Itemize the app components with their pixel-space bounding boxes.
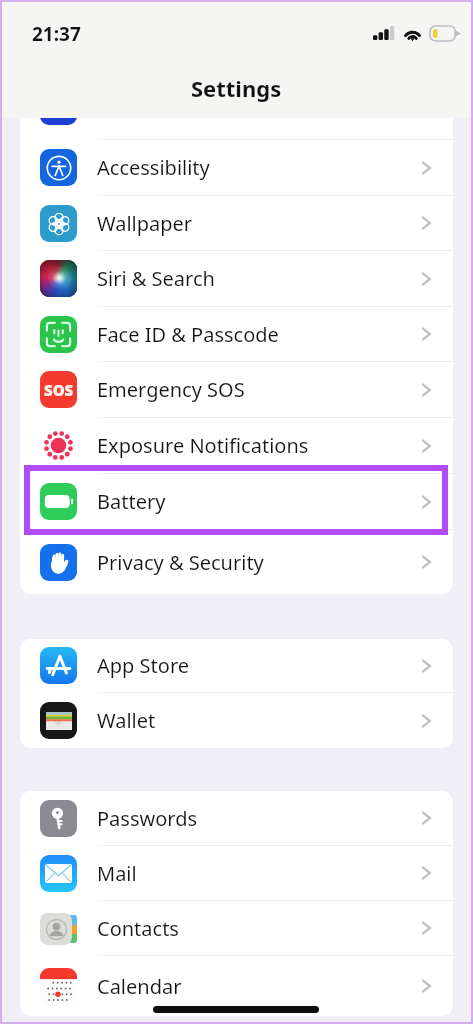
staticText: Siri & Search — [97, 265, 215, 292]
staticText: Settings — [191, 73, 282, 103]
staticText: Mail — [97, 860, 137, 887]
other: Battery — [430, 26, 458, 41]
staticText: Emergency SOS — [97, 376, 245, 403]
staticText: Wallet — [97, 707, 156, 734]
button[interactable]: Battery — [20, 474, 453, 530]
button[interactable]: Wallet — [20, 693, 453, 748]
button[interactable]: Privacy & Security — [20, 530, 453, 594]
staticText: Accessibility — [97, 154, 210, 181]
button[interactable]: Face ID & Passcode — [20, 307, 453, 362]
staticText: Exposure Notifications — [97, 432, 309, 459]
button[interactable]: Wallpaper — [20, 196, 453, 251]
button[interactable]: Siri & Search — [20, 251, 453, 307]
button[interactable]: Calendar — [20, 956, 453, 1016]
staticText: Battery — [97, 488, 166, 515]
staticText: Calendar — [97, 973, 182, 1000]
staticText: 21:37 — [32, 21, 81, 47]
staticText: App Store — [97, 652, 190, 679]
staticText: SOS — [44, 380, 74, 400]
button[interactable]: App Store — [20, 639, 453, 693]
button[interactable]: SOS — [20, 362, 453, 418]
staticText: Privacy & Security — [97, 549, 264, 576]
button[interactable]: Contacts — [20, 901, 453, 956]
staticText: Wallpaper — [97, 210, 193, 237]
button[interactable]: Mail — [20, 846, 453, 901]
other: Cellular signal — [373, 26, 395, 40]
staticText: Face ID & Passcode — [97, 321, 279, 348]
button[interactable] — [20, 118, 453, 140]
staticText: Contacts — [97, 915, 179, 942]
button[interactable]: Accessibility — [20, 140, 453, 196]
button[interactable]: Exposure Notifications — [20, 418, 453, 474]
staticText: Passwords — [97, 805, 198, 832]
button[interactable]: Passwords — [20, 791, 453, 846]
other: Wi-Fi — [402, 25, 423, 41]
